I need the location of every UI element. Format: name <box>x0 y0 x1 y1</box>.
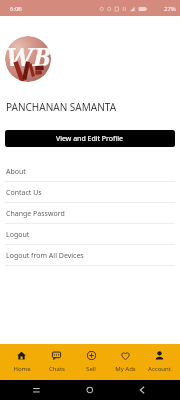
staticText: WB <box>5 38 51 73</box>
button[interactable]: Account <box>142 351 176 373</box>
staticText: Contact Us <box>6 188 42 198</box>
staticText: Chats <box>49 365 65 373</box>
button[interactable]: View and Edit Profile <box>5 130 175 147</box>
staticText: Home <box>13 365 31 373</box>
button[interactable]: Logout <box>0 224 180 245</box>
staticText: Sell <box>86 365 96 373</box>
button[interactable]: My Ads <box>108 351 142 373</box>
staticText: Account <box>148 365 171 373</box>
staticText: Change Password <box>6 209 65 219</box>
button[interactable]: Contact Us <box>0 182 180 203</box>
button[interactable]: About <box>0 161 180 182</box>
staticText: Logout <box>6 230 30 240</box>
button[interactable]: Chats <box>39 351 74 373</box>
button[interactable]: Home <box>4 351 39 373</box>
staticText: About <box>6 167 26 177</box>
staticText: 6:05 <box>10 5 22 13</box>
staticText: 27% <box>164 5 176 13</box>
staticText: Logout from All Devices <box>6 251 84 261</box>
staticText: PANCHANAN SAMANTA <box>6 100 117 114</box>
button[interactable]: Sell <box>74 351 108 373</box>
staticText: View and Edit Profile <box>56 134 124 144</box>
button[interactable]: Logout from All Devices <box>0 245 180 266</box>
staticText: My Ads <box>115 365 136 373</box>
button[interactable]: Change Password <box>0 203 180 224</box>
